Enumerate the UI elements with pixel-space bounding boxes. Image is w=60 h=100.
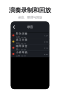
staticText: 录音 xyxy=(27,25,33,29)
staticText: 录音、整理与回放 xyxy=(18,15,42,19)
staticText: 钢琴录音 xyxy=(16,44,28,48)
staticText: 0:48 xyxy=(44,40,48,43)
staticText: 1:24 xyxy=(44,34,48,37)
staticText: 周一 20:05 xyxy=(16,48,26,51)
staticText: 小样草稿 xyxy=(16,51,28,54)
staticText: 昨天 09:10 xyxy=(16,42,26,45)
staticText: 0:57 xyxy=(44,52,48,56)
staticText: 演奏录制和回放 xyxy=(9,6,51,14)
staticText: 练习片段 xyxy=(16,38,28,42)
button[interactable]: 返回 xyxy=(11,22,17,32)
staticText: 2:13 xyxy=(44,46,48,49)
button[interactable]: 即兴演奏 xyxy=(11,32,49,39)
button[interactable]: 练习片段 xyxy=(11,39,49,45)
staticText: 上周 18:47 xyxy=(16,54,26,57)
staticText: 即兴演奏 xyxy=(16,32,28,35)
staticText: 今天 14:32 xyxy=(16,35,26,39)
button[interactable]: 钢琴录音 xyxy=(11,45,49,51)
button[interactable]: 小样草稿 xyxy=(11,51,49,57)
